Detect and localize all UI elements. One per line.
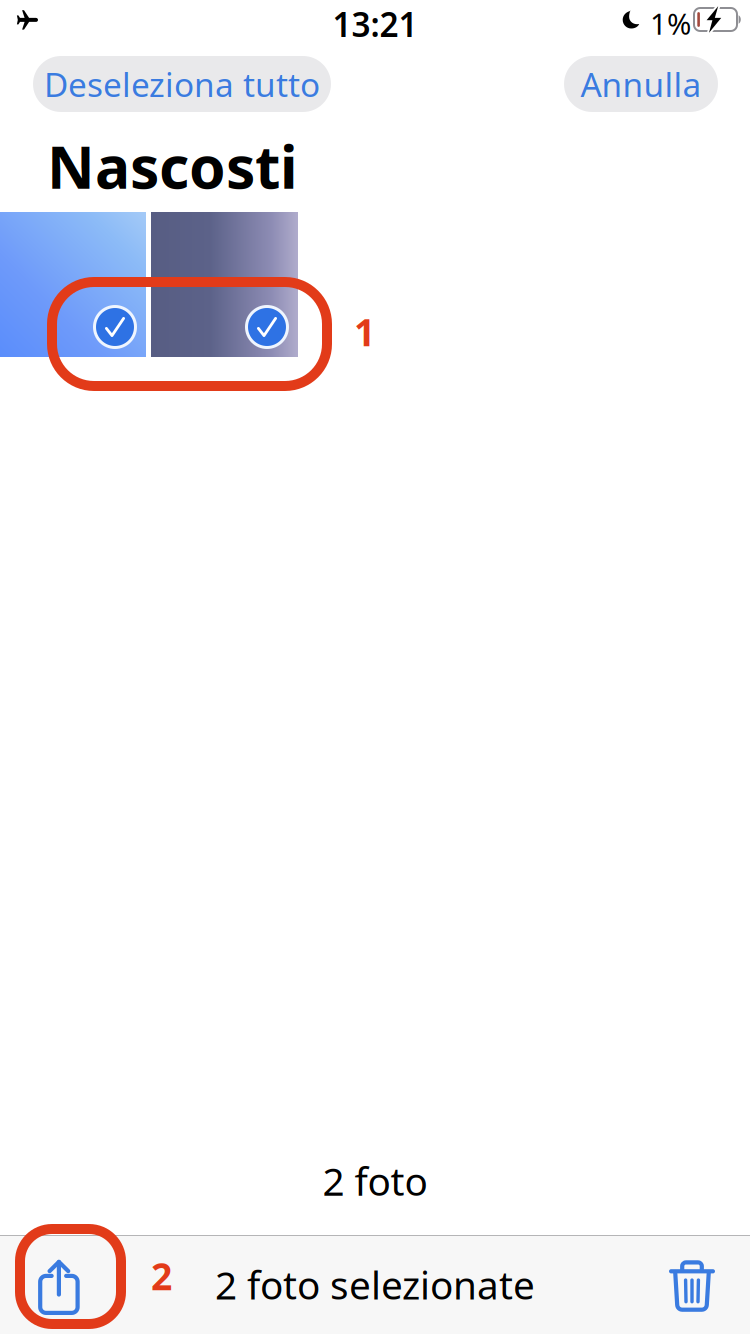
staticText: 2 foto selezionate xyxy=(215,1259,535,1310)
staticText: Deseleziona tutto xyxy=(44,62,320,106)
staticText: 1 xyxy=(354,307,375,357)
staticText: Annulla xyxy=(580,62,701,106)
staticText: 2 foto xyxy=(322,1155,427,1206)
button[interactable]: Elimina xyxy=(632,1235,750,1334)
button[interactable]: Deseleziona tutto xyxy=(33,56,331,112)
button[interactable]: Condividi xyxy=(0,1235,118,1334)
staticText: Nascosti xyxy=(47,127,298,205)
staticText: 13:21 xyxy=(332,2,417,46)
staticText: 2 xyxy=(151,1251,172,1301)
staticText: 1% xyxy=(650,4,691,43)
button[interactable]: Annulla xyxy=(564,56,718,112)
